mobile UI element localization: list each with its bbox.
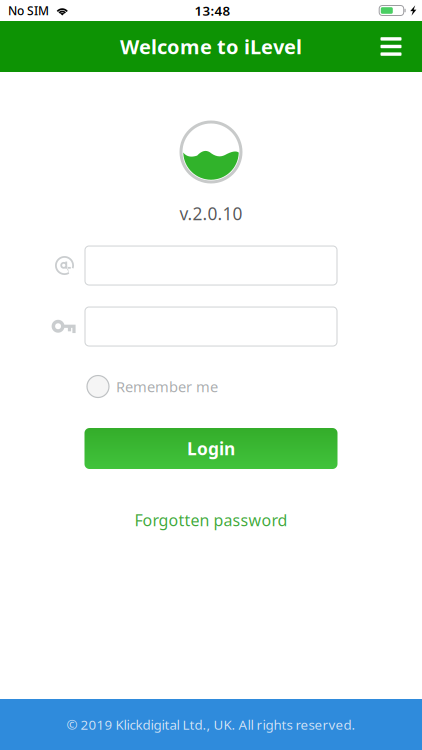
staticText: Login xyxy=(187,437,235,460)
button[interactable]: Login xyxy=(84,428,337,469)
staticText: v.2.0.10 xyxy=(179,202,242,225)
staticText: Welcome to iLevel xyxy=(120,33,302,60)
staticText: Remember me xyxy=(116,377,218,396)
staticText: © 2019 Klickdigital Ltd., UK. All rights… xyxy=(66,716,355,733)
button[interactable]: Remember me xyxy=(85,375,337,398)
button[interactable]: Menu xyxy=(368,21,414,72)
staticText: 13:48 xyxy=(194,2,230,19)
staticText: Forgotten password xyxy=(134,509,287,531)
button[interactable]: Forgotten password xyxy=(85,505,337,535)
staticText: No SIM xyxy=(8,2,49,18)
